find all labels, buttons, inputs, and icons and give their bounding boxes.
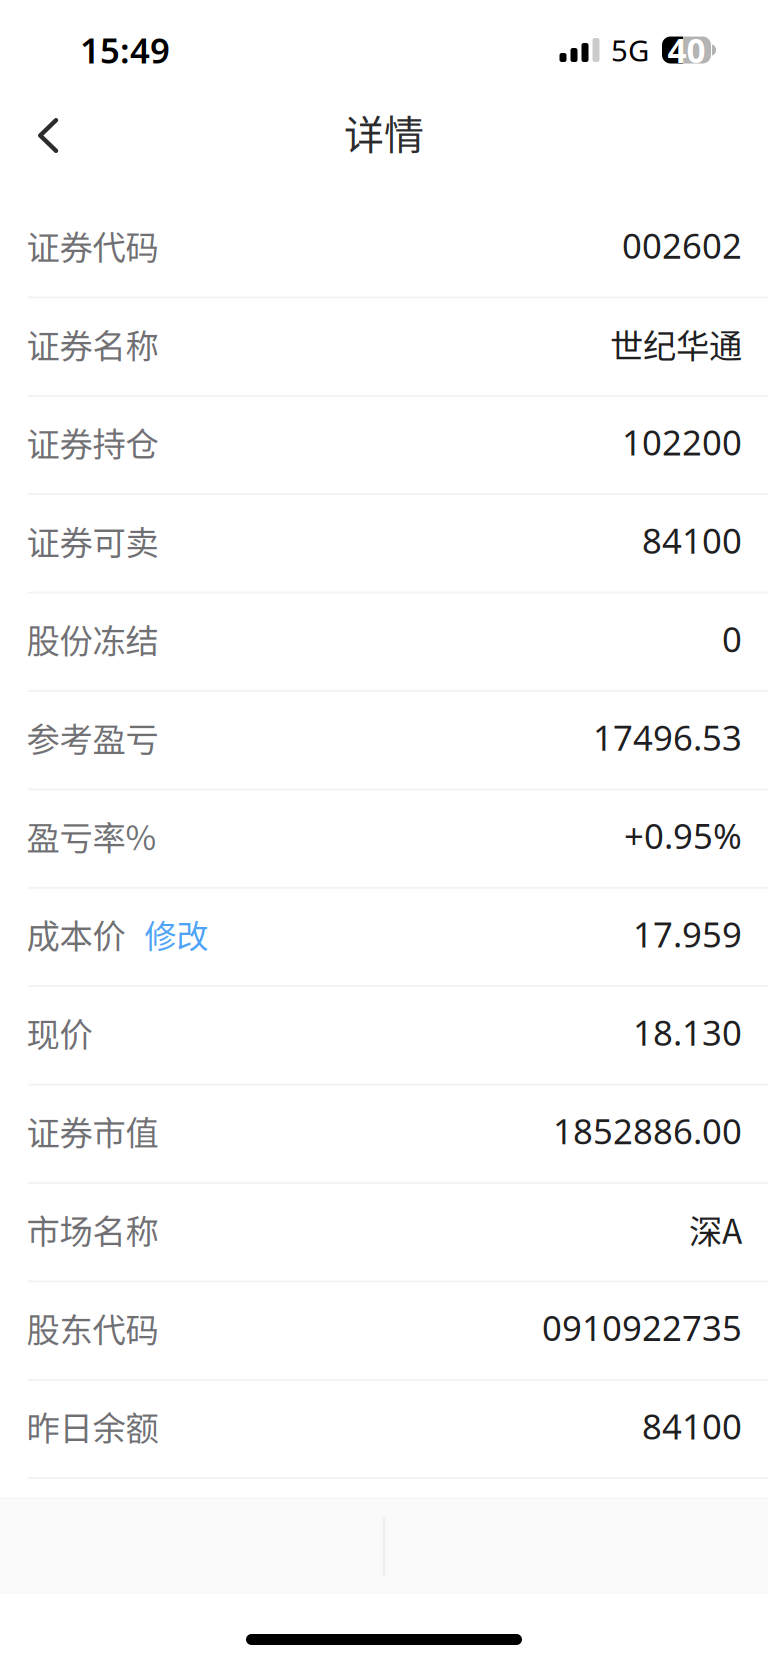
staticText: 修改 <box>144 911 208 957</box>
staticText: 深A <box>689 1205 742 1253</box>
staticText: 证券市值 <box>26 1107 158 1155</box>
staticText: 股东代码 <box>26 1303 158 1352</box>
staticText: 1852886.00 <box>553 1107 742 1154</box>
staticText: 证券代码 <box>26 221 158 269</box>
staticText: 84100 <box>642 517 742 564</box>
staticText: 15:49 <box>80 26 170 74</box>
staticText: 昨日余额 <box>26 1402 158 1450</box>
button[interactable]: 修改 <box>125 903 208 965</box>
staticText: 证券可卖 <box>26 516 158 565</box>
staticText: 5G <box>611 30 649 70</box>
staticText: 17.959 <box>633 910 742 958</box>
staticText: 证券名称 <box>26 319 158 368</box>
staticText: 参考盈亏 <box>26 713 158 761</box>
staticText: 现价 <box>26 1008 92 1057</box>
staticText: 世纪华通 <box>610 319 742 368</box>
button[interactable]: Back <box>0 85 91 185</box>
staticText: 详情 <box>344 103 424 161</box>
staticText: 成本价 <box>26 910 125 958</box>
staticText: 002602 <box>622 222 742 269</box>
staticText: 0910922735 <box>542 1304 742 1351</box>
staticText: 84100 <box>642 1402 742 1450</box>
staticText: 证券持仓 <box>26 418 158 466</box>
staticText: 0 <box>722 615 742 662</box>
staticText: 市场名称 <box>26 1205 158 1253</box>
staticText: 18.130 <box>633 1009 742 1056</box>
staticText: 17496.53 <box>593 714 742 761</box>
staticText: 股份冻结 <box>26 615 158 663</box>
staticText: 102200 <box>622 418 742 466</box>
staticText: 盈亏率% <box>26 811 156 860</box>
staticText: 40 <box>667 27 705 73</box>
staticText: +0.95% <box>624 812 742 859</box>
